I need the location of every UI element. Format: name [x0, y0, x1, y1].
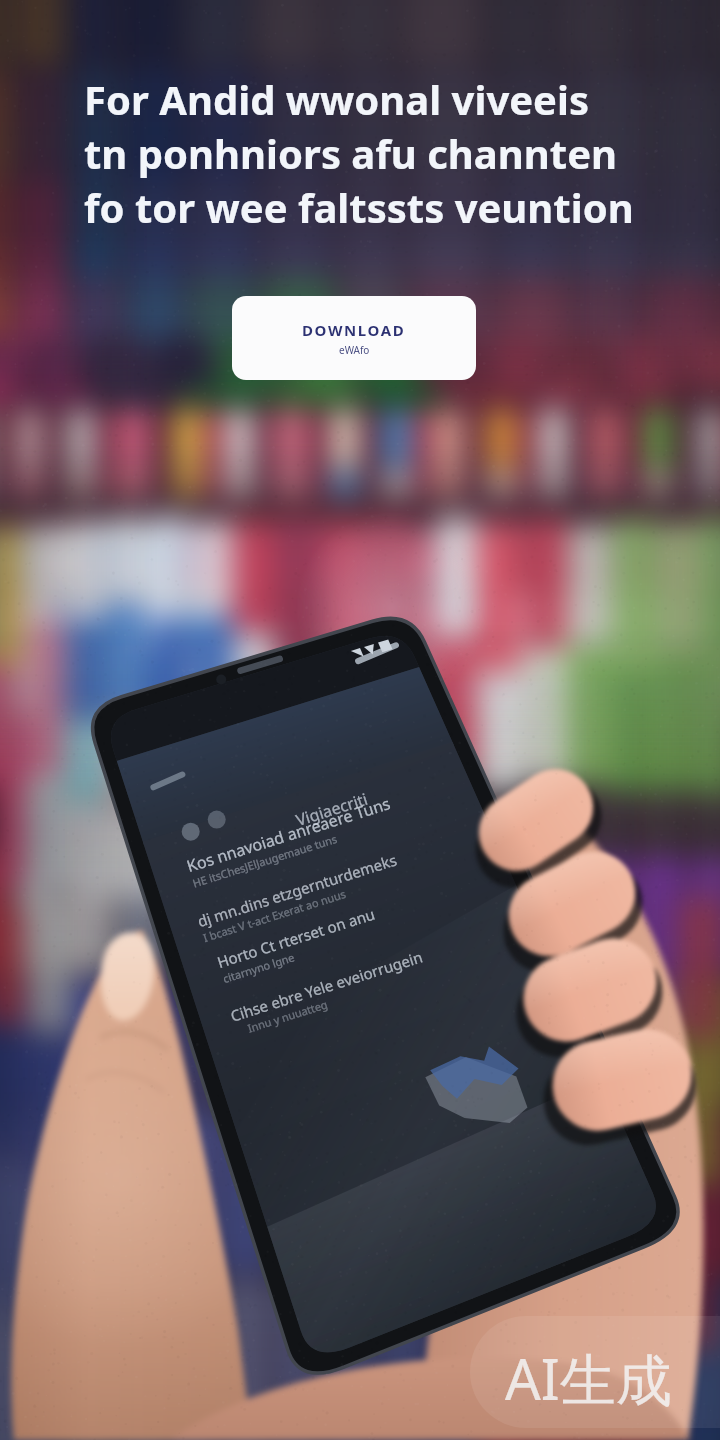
staticText: DOWNLOAD — [302, 320, 406, 340]
button[interactable]: DOWNLOAD — [232, 296, 476, 380]
button[interactable]: App preview on phone — [84, 610, 690, 1400]
staticText: tn ponhniors afu channten — [84, 126, 618, 180]
staticText: AI生成 — [505, 1340, 672, 1416]
staticText: For Andid wwonal viveeis — [84, 72, 590, 126]
staticText: fo tor wee faltssts veuntion — [84, 180, 634, 234]
staticText: eWAfo — [339, 343, 370, 357]
